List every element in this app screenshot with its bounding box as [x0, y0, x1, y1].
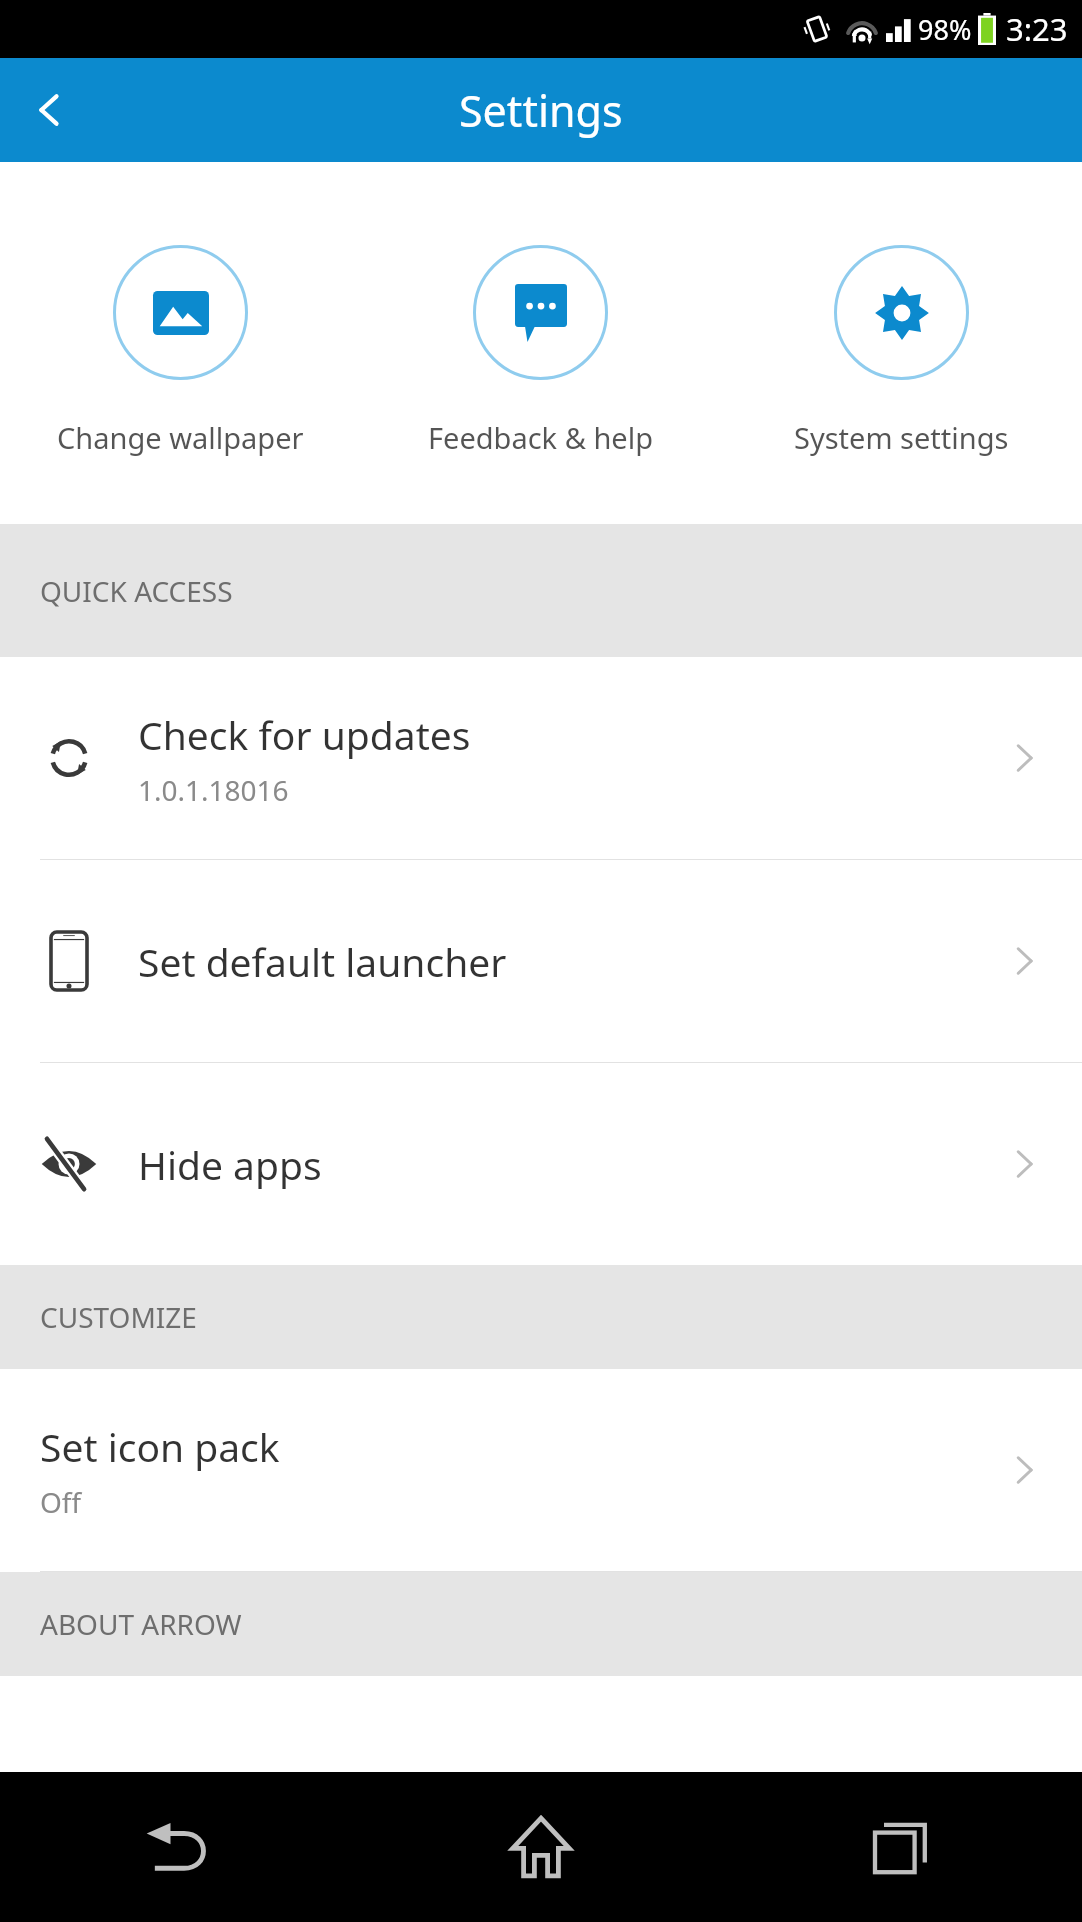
staticText: System settings [794, 418, 1009, 457]
button[interactable]: Feedback & help [360, 162, 721, 524]
button[interactable]: Home [360, 1772, 721, 1922]
staticText: Feedback & help [428, 418, 654, 457]
button[interactable]: Back [0, 1772, 360, 1922]
button[interactable]: Back [0, 60, 100, 160]
staticText: QUICK ACCESS [40, 572, 233, 610]
staticText: ABOUT ARROW [40, 1605, 242, 1643]
staticText: Set default launcher [138, 935, 507, 988]
staticText: Off [40, 1483, 82, 1521]
staticText: Check for updates [138, 708, 471, 761]
button[interactable]: Hide apps [0, 1063, 1082, 1265]
button[interactable]: Change wallpaper [0, 162, 360, 524]
staticText: Hide apps [138, 1138, 322, 1191]
button[interactable]: Set default launcher [0, 860, 1082, 1062]
staticText: 3:23 [1006, 8, 1068, 50]
button[interactable]: System settings [721, 162, 1082, 524]
button[interactable]: Check for updates [0, 657, 1082, 859]
staticText: Change wallpaper [57, 418, 304, 457]
button[interactable]: Set icon pack [0, 1369, 1082, 1571]
button[interactable]: Recent apps [721, 1772, 1082, 1922]
staticText: Set icon pack [40, 1420, 280, 1473]
staticText: Settings [459, 81, 623, 140]
staticText: 98% [918, 11, 972, 48]
staticText: CUSTOMIZE [40, 1298, 197, 1336]
staticText: 1.0.1.18016 [138, 771, 289, 809]
